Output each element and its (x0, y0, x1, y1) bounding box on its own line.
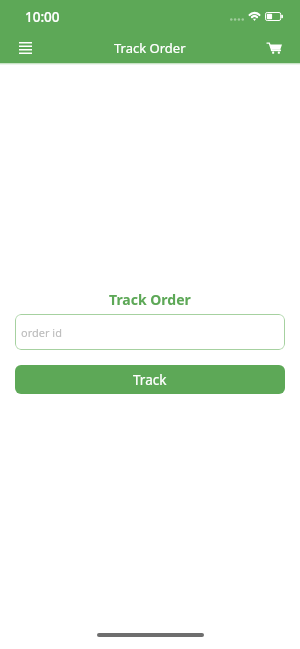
staticText: Track Order (114, 39, 186, 57)
button[interactable]: Track (15, 365, 285, 394)
staticText: Track (133, 371, 167, 389)
staticText: 10:00 (25, 8, 60, 26)
staticText: order id (21, 325, 62, 340)
staticText: Track Order (109, 290, 191, 309)
button[interactable]: order id (15, 314, 285, 350)
button[interactable]: Open navigation menu (10, 32, 41, 63)
button[interactable]: Shopping cart (259, 32, 290, 63)
